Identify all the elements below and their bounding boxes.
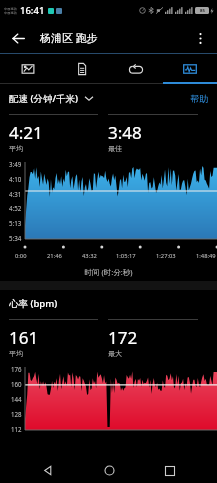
staticText: 128 (11, 410, 22, 418)
staticText: 4:52 (9, 204, 22, 212)
staticText: 帮助 (190, 93, 208, 104)
staticText: 最大 (108, 349, 122, 358)
staticText: 172 (108, 326, 138, 349)
staticText: 4:10 (9, 175, 22, 183)
button[interactable]: Charts (163, 54, 217, 84)
button[interactable]: 配速 (分钟/千米) (9, 92, 93, 105)
staticText: 中国移动 (4, 7, 17, 11)
button[interactable]: Map (0, 54, 55, 84)
button[interactable]: 161 (9, 319, 108, 358)
button[interactable]: 3:48 (108, 114, 208, 153)
staticText: 4:31 (9, 190, 22, 198)
button[interactable]: 172 (108, 319, 208, 358)
staticText: 平均 (9, 349, 23, 358)
button[interactable]: Back (32, 458, 62, 483)
staticText: 112 (11, 425, 22, 433)
staticText: 4:21 (9, 121, 43, 144)
staticText: 配速 (分钟/千米) (9, 92, 79, 105)
button[interactable]: Recents (155, 458, 185, 483)
button[interactable]: More options (187, 25, 213, 51)
button[interactable]: 心率 (bpm) (9, 297, 58, 310)
staticText: 21:46 (47, 252, 62, 260)
staticText: 0:00 (15, 252, 27, 260)
staticText: 1:05:17 (116, 252, 136, 260)
staticText: 161 (9, 326, 39, 349)
staticText: 5:13 (9, 219, 22, 227)
button[interactable]: Home (94, 458, 124, 483)
staticText: 3:48 (108, 121, 142, 144)
staticText: 43:32 (82, 252, 97, 260)
staticText: 最佳 (108, 144, 122, 153)
staticText: 144 (11, 395, 22, 403)
staticText: 心率 (bpm) (9, 297, 58, 310)
staticText: 1:48:49 (196, 252, 216, 260)
staticText: 160 (11, 380, 22, 388)
button[interactable]: 帮助 (190, 93, 208, 104)
staticText: 平均 (9, 144, 23, 153)
button[interactable]: 4:21 (9, 114, 108, 153)
staticText: 杨浦区 跑步 (40, 30, 98, 45)
staticText: 3:49 (9, 160, 22, 168)
staticText: 16:41 (20, 4, 45, 17)
button[interactable]: Laps (109, 54, 163, 84)
staticText: 中国移动 (4, 11, 17, 15)
staticText: 85 (200, 8, 205, 14)
staticText: 5:34 (9, 234, 22, 242)
button[interactable]: Back (5, 25, 31, 51)
staticText: 176 (11, 365, 22, 373)
staticText: 1:27:03 (156, 252, 176, 260)
button[interactable]: Details (55, 54, 109, 84)
staticText: 时间 (时:分:秒) (0, 267, 217, 277)
